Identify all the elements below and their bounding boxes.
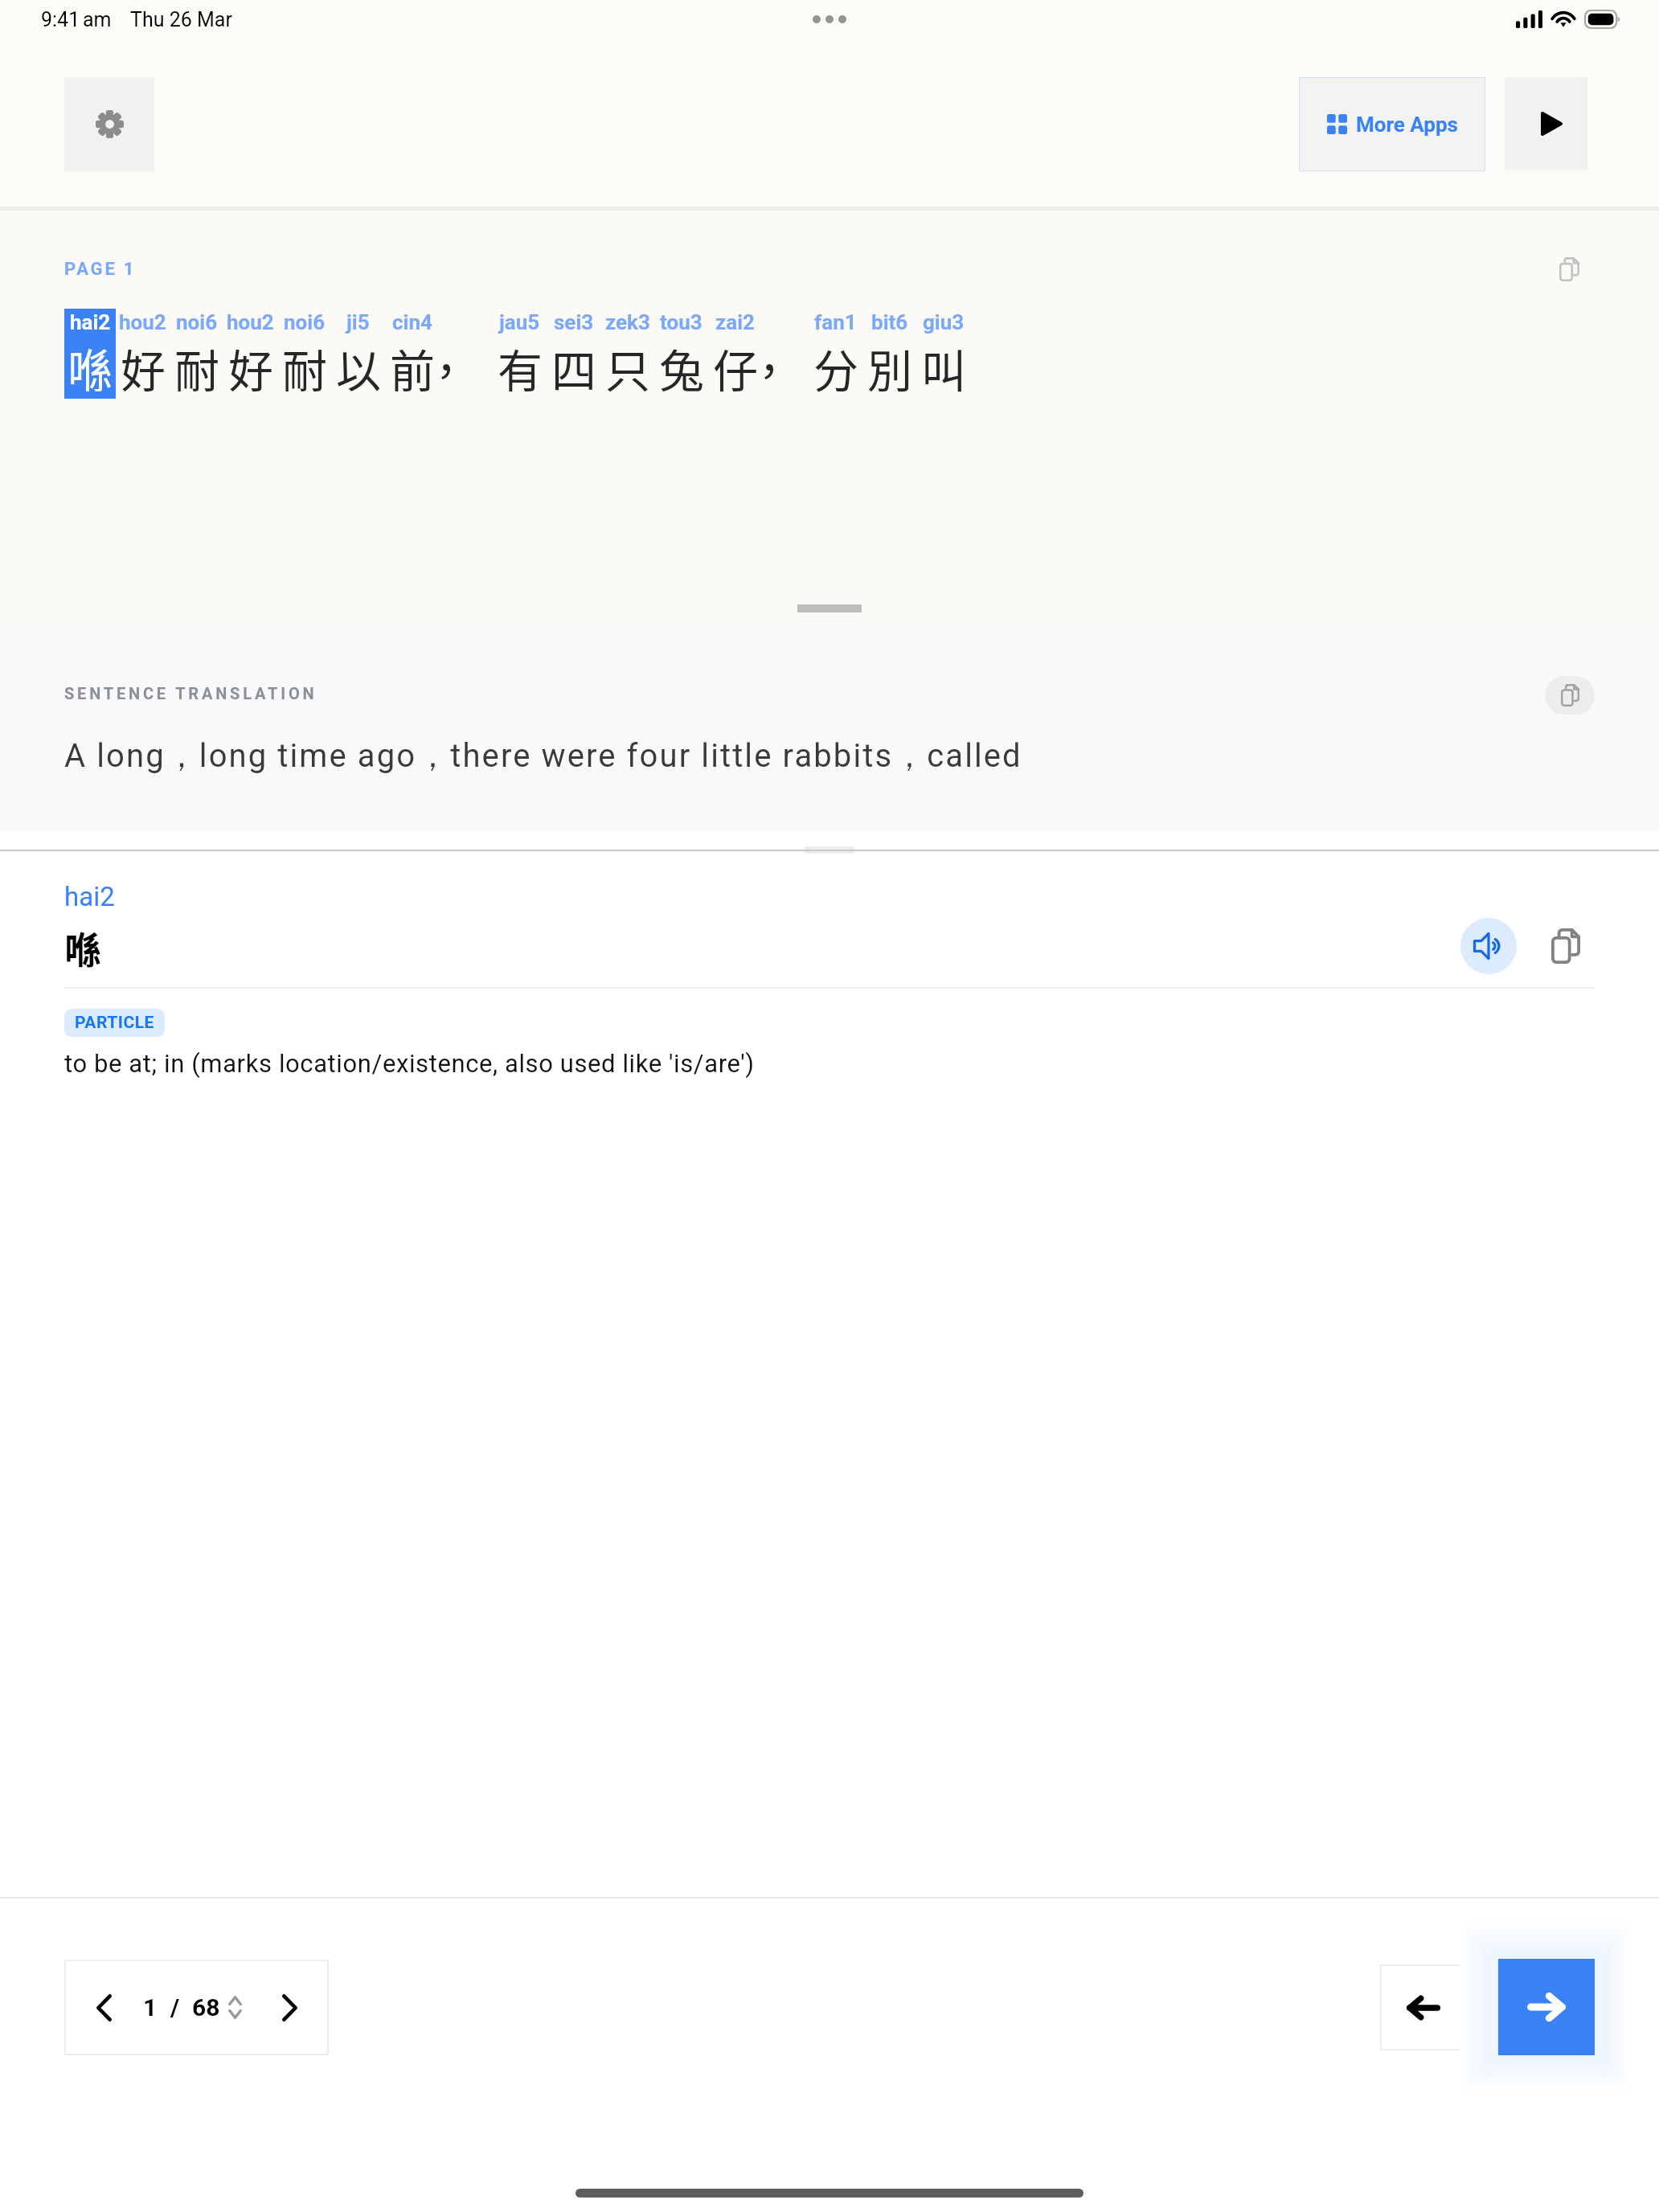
staticText: PAGE 1	[64, 259, 137, 280]
staticText: hai2	[64, 881, 115, 912]
staticText: SENTENCE TRANSLATION	[64, 684, 317, 703]
staticText: zai2	[715, 310, 755, 334]
button[interactable]: Play audio	[1505, 77, 1587, 170]
staticText: to be at; in (marks location/existence, …	[64, 1049, 755, 1078]
staticText: sei3	[554, 310, 594, 334]
button[interactable]: Previous page	[64, 1960, 329, 2055]
staticText: 仔	[713, 335, 758, 399]
staticText: cin4	[392, 310, 432, 334]
staticText: bit6	[871, 310, 908, 334]
staticText: More Apps	[1356, 113, 1458, 137]
staticText: noi6	[176, 310, 218, 334]
staticText: 別	[867, 335, 912, 399]
staticText: hai2	[70, 310, 111, 334]
staticText: 1	[143, 1993, 158, 2022]
button[interactable]: Next	[1498, 1959, 1595, 2055]
staticText: /	[170, 1993, 180, 2022]
button[interactable]: More Apps	[1299, 77, 1485, 171]
staticText: 好	[121, 335, 166, 399]
staticText: noi6	[284, 310, 326, 334]
staticText: jau5	[499, 310, 540, 334]
staticText: A long，long time ago，there were four lit…	[64, 735, 1022, 776]
button[interactable]: Settings	[64, 77, 154, 171]
staticText: am	[83, 8, 112, 31]
staticText: 兔	[659, 335, 704, 399]
staticText: 耐	[282, 335, 327, 399]
button[interactable]: Play pronunciation	[1460, 918, 1517, 974]
staticText: 有	[498, 335, 543, 399]
staticText: 68	[192, 1993, 220, 2022]
staticText: 好	[228, 335, 273, 399]
staticText: 9:41	[41, 8, 80, 31]
staticText: zek3	[605, 310, 650, 334]
button[interactable]: Copy translation	[1545, 676, 1595, 715]
staticText: hou2	[227, 310, 274, 334]
staticText: fan1	[814, 310, 857, 334]
staticText: ，	[747, 335, 792, 399]
staticText: tou3	[660, 310, 703, 334]
staticText: 喺	[68, 335, 113, 399]
staticText: 喺	[64, 921, 101, 975]
button[interactable]: Copy word	[1538, 918, 1594, 974]
staticText: 前	[390, 335, 435, 399]
staticText: 以	[336, 335, 381, 399]
button[interactable]: Previous page	[71, 1960, 137, 2055]
button[interactable]: Previous	[1380, 1964, 1466, 2050]
staticText: Thu 26 Mar	[130, 8, 232, 31]
button[interactable]: Copy sentence	[1550, 250, 1588, 289]
staticText: 只	[605, 335, 650, 399]
staticText: hou2	[119, 310, 166, 334]
staticText: giu3	[923, 310, 965, 334]
staticText: 分	[813, 335, 858, 399]
staticText: 耐	[174, 335, 219, 399]
staticText: ji5	[346, 310, 370, 334]
staticText: PARTICLE	[75, 1013, 154, 1033]
button[interactable]: Next page	[256, 1960, 322, 2055]
staticText: ，	[424, 335, 469, 399]
staticText: 四	[551, 335, 596, 399]
staticText: 叫	[921, 335, 966, 399]
